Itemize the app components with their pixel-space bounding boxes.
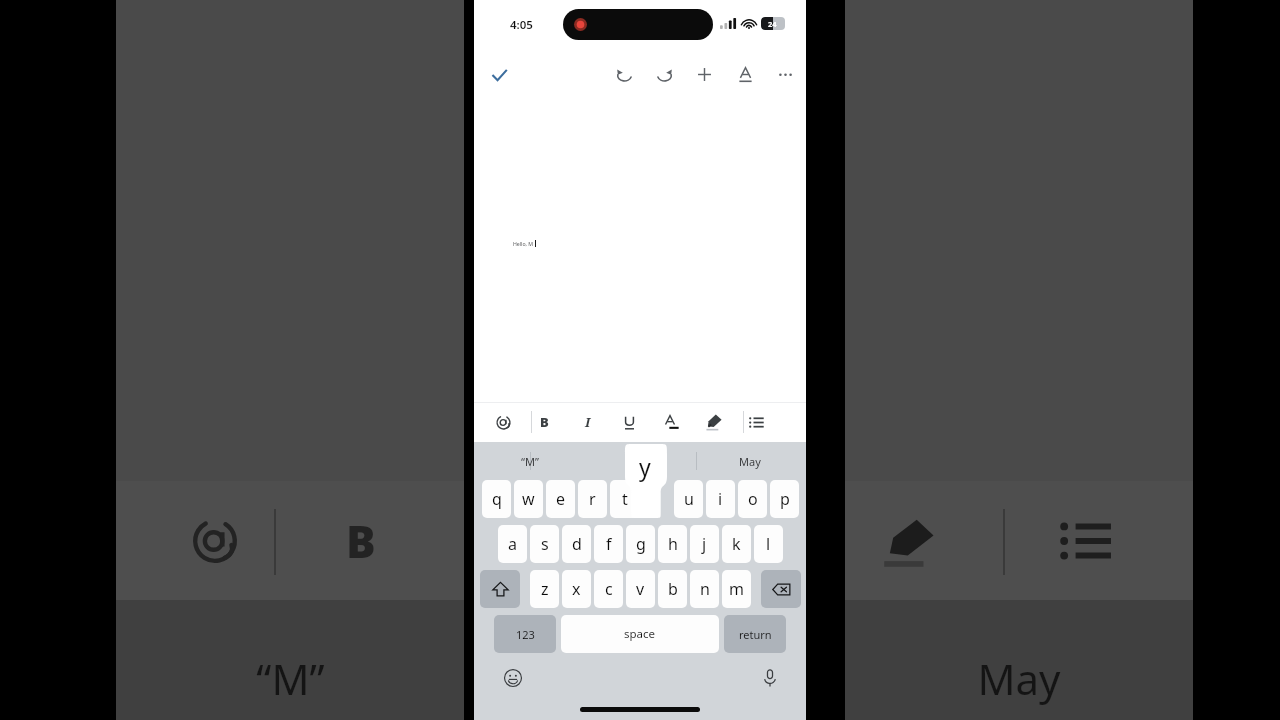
button[interactable]: l	[754, 525, 783, 563]
button[interactable]: u	[674, 480, 703, 518]
button[interactable]: i	[706, 480, 735, 518]
button[interactable]: Redo	[648, 58, 680, 90]
staticText: t	[622, 488, 628, 510]
staticText: May	[739, 454, 761, 469]
button[interactable]: p	[770, 480, 799, 518]
staticText: z	[541, 578, 549, 600]
staticText: 123	[516, 627, 535, 642]
button[interactable]: May	[714, 442, 786, 480]
staticText: h	[668, 533, 678, 555]
button[interactable]: c	[594, 570, 623, 608]
staticText: B	[540, 413, 549, 431]
staticText: g	[636, 533, 646, 555]
button[interactable]	[699, 402, 729, 442]
button[interactable]: e	[546, 480, 575, 518]
button[interactable]: j	[690, 525, 719, 563]
button[interactable]: More options	[769, 58, 801, 90]
staticText: return	[739, 627, 772, 642]
button[interactable]: d	[562, 525, 591, 563]
button[interactable]: s	[530, 525, 559, 563]
staticText: p	[780, 488, 790, 510]
button[interactable]	[741, 402, 771, 442]
staticText: a	[508, 533, 517, 555]
staticText: u	[684, 488, 694, 510]
button[interactable]: I	[573, 402, 603, 442]
staticText: I	[585, 413, 591, 431]
staticText: e	[556, 488, 566, 510]
button[interactable]: Numbers	[494, 615, 556, 653]
button[interactable]: z	[530, 570, 559, 608]
button[interactable]: Emoji	[498, 663, 528, 693]
button[interactable]: “M”	[494, 442, 566, 480]
button[interactable]: q	[482, 480, 511, 518]
button[interactable]: Undo	[608, 58, 640, 90]
staticText: x	[572, 578, 581, 600]
button[interactable]: a	[498, 525, 527, 563]
staticText: 4:05	[510, 17, 533, 33]
button[interactable]: g	[626, 525, 655, 563]
button[interactable]: o	[738, 480, 767, 518]
button[interactable]: h	[658, 525, 687, 563]
staticText: y	[639, 451, 651, 482]
staticText: i	[718, 488, 723, 510]
button[interactable]: t	[610, 480, 639, 518]
button[interactable]: Text formatting	[729, 58, 761, 90]
staticText: 24	[768, 19, 777, 29]
staticText: m	[729, 578, 744, 600]
staticText: j	[702, 533, 707, 555]
button[interactable]: w	[514, 480, 543, 518]
staticText: space	[624, 626, 656, 642]
button[interactable]	[488, 402, 518, 442]
staticText: n	[700, 578, 710, 600]
staticText: “M”	[521, 454, 539, 469]
staticText: Hello, M	[513, 240, 534, 247]
button[interactable]: v	[626, 570, 655, 608]
button[interactable]: x	[562, 570, 591, 608]
staticText: f	[606, 533, 612, 555]
staticText: c	[605, 578, 613, 600]
staticText: s	[541, 533, 549, 555]
button[interactable]	[614, 402, 644, 442]
staticText: “M”	[256, 650, 325, 707]
button[interactable]: Shift	[480, 570, 520, 608]
button[interactable]: Backspace	[761, 570, 801, 608]
button[interactable]: f	[594, 525, 623, 563]
button[interactable]: m	[722, 570, 751, 608]
staticText: w	[522, 488, 535, 510]
button[interactable]: Insert	[688, 58, 720, 90]
staticText: r	[589, 488, 596, 510]
button[interactable]: b	[658, 570, 687, 608]
button[interactable]: Done	[482, 58, 516, 92]
staticText: v	[636, 578, 645, 600]
button[interactable]: n	[690, 570, 719, 608]
staticText: l	[766, 533, 771, 555]
staticText: o	[748, 488, 758, 510]
staticText: B	[346, 511, 376, 571]
button[interactable]: r	[578, 480, 607, 518]
staticText: d	[572, 533, 582, 555]
button[interactable]: k	[722, 525, 751, 563]
button[interactable]: Return	[724, 615, 786, 653]
staticText: May	[977, 650, 1061, 707]
staticText: b	[668, 578, 678, 600]
button[interactable]: space	[561, 615, 719, 653]
staticText: q	[492, 488, 502, 510]
button[interactable]: Dictation	[755, 663, 785, 693]
button[interactable]: B	[529, 402, 559, 442]
staticText: k	[732, 533, 741, 555]
button[interactable]	[655, 402, 685, 442]
